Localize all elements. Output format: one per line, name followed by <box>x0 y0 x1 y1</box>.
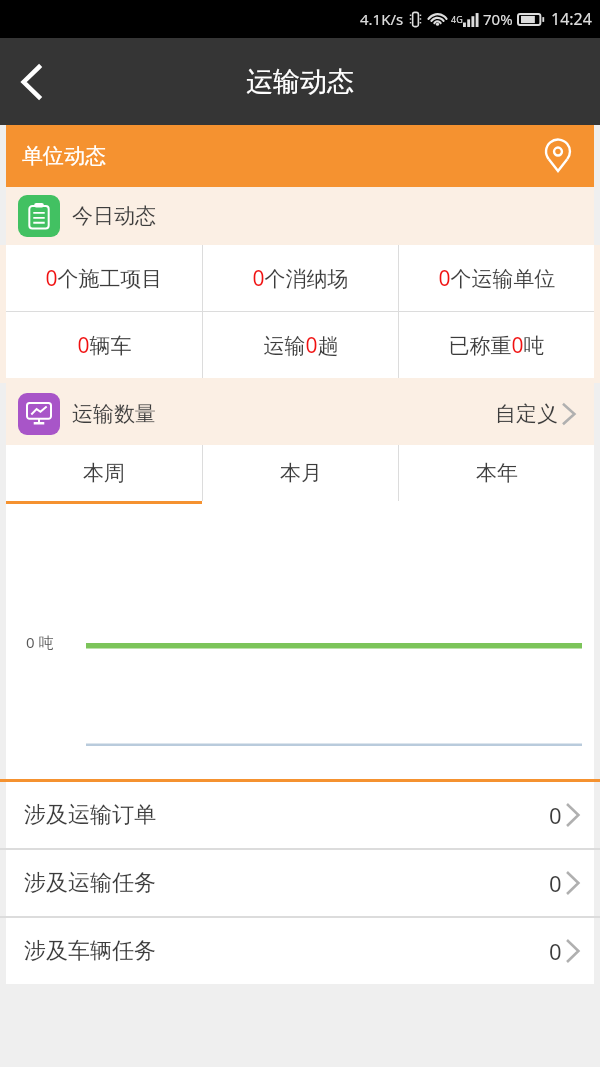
staticText: 0个运输单位 <box>438 264 556 293</box>
button[interactable]: Location <box>538 136 578 176</box>
staticText: 0个施工项目 <box>45 264 163 293</box>
staticText: 运输0趟 <box>263 331 339 360</box>
button[interactable]: 本年 <box>399 445 594 501</box>
staticText: 14:24 <box>551 8 592 30</box>
staticText: 运输动态 <box>246 65 354 99</box>
staticText: 运输数量 <box>72 401 156 427</box>
button[interactable]: 0个施工项目 <box>6 245 202 311</box>
staticText: 已称重0吨 <box>448 331 545 360</box>
staticText: 涉及运输任务 <box>24 869 156 897</box>
staticText: 70% <box>483 9 513 29</box>
staticText: 自定义 <box>495 401 558 427</box>
button[interactable]: 单位动态 <box>6 125 594 187</box>
staticText: 本月 <box>280 460 322 486</box>
button[interactable]: 运输数量 <box>6 383 594 445</box>
button[interactable]: 0个运输单位 <box>399 245 594 311</box>
button[interactable]: 运输0趟 <box>203 312 398 378</box>
button[interactable]: 涉及运输任务 <box>6 850 594 916</box>
button[interactable]: 0辆车 <box>6 312 202 378</box>
staticText: 0 <box>549 868 562 898</box>
staticText: 0 <box>549 800 562 830</box>
staticText: 涉及运输订单 <box>24 801 156 829</box>
staticText: 涉及车辆任务 <box>24 937 156 965</box>
button[interactable]: 自定义 <box>491 401 582 427</box>
button[interactable]: 今日动态 <box>6 187 594 245</box>
button[interactable]: 已称重0吨 <box>399 312 594 378</box>
staticText: 4.1K/s <box>360 9 404 29</box>
staticText: 单位动态 <box>22 143 106 169</box>
staticText: 0辆车 <box>77 331 132 360</box>
button[interactable]: 本月 <box>203 445 398 501</box>
staticText: 4G <box>451 13 463 25</box>
button[interactable]: 0个消纳场 <box>203 245 398 311</box>
staticText: 本周 <box>83 460 125 486</box>
staticText: 今日动态 <box>72 203 156 229</box>
staticText: 本年 <box>476 460 518 486</box>
staticText: 0 <box>549 936 562 966</box>
staticText: 0个消纳场 <box>252 264 349 293</box>
staticText: 0 吨 <box>26 632 54 652</box>
button[interactable]: 涉及运输订单 <box>6 782 594 848</box>
button[interactable]: 涉及车辆任务 <box>6 918 594 984</box>
button[interactable]: 本周 <box>6 445 202 501</box>
button[interactable]: Back <box>0 50 64 114</box>
